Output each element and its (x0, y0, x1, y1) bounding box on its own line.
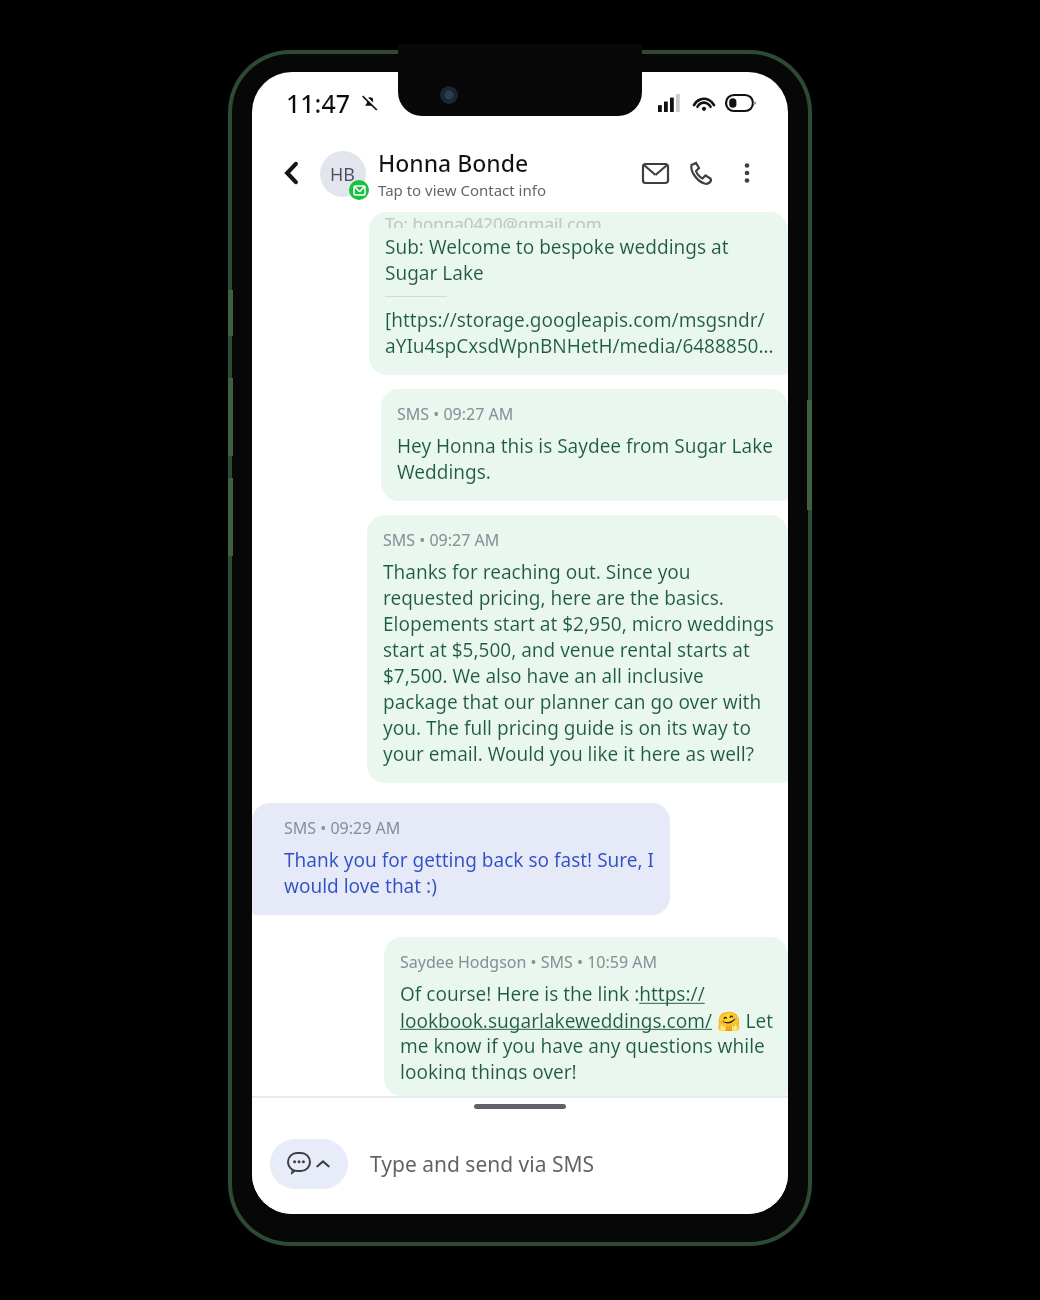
button[interactable]: SMS • 09:29 AM (252, 803, 670, 915)
staticText: [https://storage.googleapis.com/msgsndr/… (385, 307, 774, 359)
button[interactable]: Back (270, 151, 314, 195)
button[interactable]: HB (320, 147, 632, 200)
button[interactable]: To: honna0420@gmail.com (369, 212, 788, 375)
button[interactable]: Email (632, 150, 678, 196)
staticText: SMS • 09:29 AM (284, 817, 401, 839)
button[interactable]: Call (678, 150, 724, 196)
button[interactable]: Saydee Hodgson • SMS • 10:59 AM (384, 937, 788, 1096)
staticText: To: honna0420@gmail.com (385, 212, 602, 228)
button[interactable]: Type and send via SMS (370, 1114, 788, 1214)
staticText: SMS • 09:27 AM (397, 403, 514, 425)
staticText: HB (330, 162, 356, 187)
staticText: Tap to view Contact info (378, 180, 546, 200)
staticText: Saydee Hodgson • SMS • 10:59 AM (400, 951, 657, 973)
button[interactable]: More options (724, 150, 770, 196)
staticText: Sub: Welcome to bespoke weddings at Suga… (385, 234, 729, 286)
staticText: Hey Honna this is Saydee from Sugar Lake… (397, 433, 774, 485)
staticText: SMS • 09:27 AM (383, 529, 500, 551)
staticText: Thank you for getting back so fast! Sure… (284, 847, 654, 899)
staticText: 11:47 (286, 86, 351, 120)
staticText: Type and send via SMS (370, 1150, 595, 1179)
button[interactable]: SMS • 09:27 AM (367, 515, 788, 783)
button[interactable]: SMS • 09:27 AM (381, 389, 788, 501)
staticText: Of course! Here is the link :https:// lo… (400, 981, 774, 1080)
staticText: Thanks for reaching out. Since you reque… (383, 559, 774, 767)
staticText: Honna Bonde (378, 147, 529, 178)
button[interactable]: Choose message type (270, 1139, 348, 1189)
